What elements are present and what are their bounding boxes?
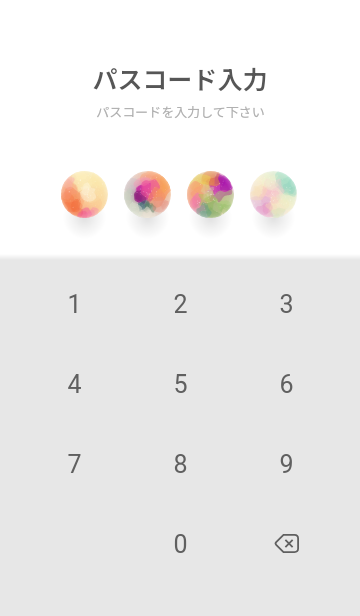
button[interactable]: 4	[21, 344, 127, 424]
staticText: 2	[173, 290, 188, 319]
staticText: 5	[173, 370, 188, 399]
button[interactable]: 7	[21, 424, 127, 504]
button[interactable]: 9	[233, 424, 339, 504]
button[interactable]: 6	[233, 344, 339, 424]
staticText: 9	[279, 450, 294, 479]
staticText: パスコード入力	[92, 60, 268, 96]
staticText: 6	[279, 370, 294, 399]
staticText: パスコードを入力して下さい	[96, 102, 265, 121]
staticText: 1	[67, 290, 82, 319]
staticText: 4	[67, 370, 82, 399]
button[interactable]: 3	[233, 264, 339, 344]
staticText: 8	[173, 450, 188, 479]
button[interactable]: 5	[127, 344, 233, 424]
button[interactable]: 2	[127, 264, 233, 344]
staticText: 3	[279, 290, 294, 319]
staticText: 0	[173, 530, 188, 559]
button[interactable]: Backspace	[233, 504, 339, 584]
staticText: 7	[67, 450, 82, 479]
button[interactable]: 1	[21, 264, 127, 344]
button[interactable]: 0	[127, 504, 233, 584]
button[interactable]: 8	[127, 424, 233, 504]
